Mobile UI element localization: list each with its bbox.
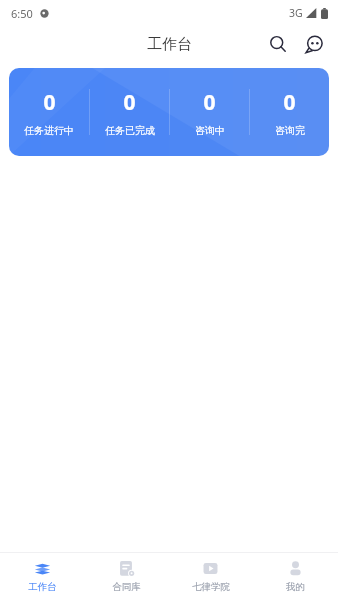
staticText: 咨询完 xyxy=(275,124,305,137)
staticText: 0 xyxy=(203,88,216,117)
staticText: 合同库 xyxy=(112,581,141,593)
staticText: 任务已完成 xyxy=(105,124,155,137)
staticText: 6:50 xyxy=(11,6,33,21)
staticText: 0 xyxy=(283,88,296,117)
button[interactable]: Messages xyxy=(298,28,330,60)
staticText: 咨询中 xyxy=(195,124,225,137)
button[interactable]: 0 xyxy=(90,68,169,156)
button[interactable]: 工作台 xyxy=(0,553,84,600)
button[interactable]: 七律学院 xyxy=(168,553,253,600)
staticText: 我的 xyxy=(286,581,305,593)
button[interactable]: 0 xyxy=(250,68,329,156)
button[interactable]: 合同库 xyxy=(84,553,168,600)
button[interactable]: 0 xyxy=(9,68,89,156)
button[interactable]: 我的 xyxy=(253,553,338,600)
staticText: 0 xyxy=(43,88,56,117)
staticText: 3G xyxy=(289,6,303,20)
button[interactable]: 0 xyxy=(170,68,249,156)
staticText: 任务进行中 xyxy=(24,124,74,137)
staticText: 七律学院 xyxy=(192,581,230,593)
button[interactable]: Search xyxy=(262,28,294,60)
staticText: 工作台 xyxy=(28,581,57,593)
staticText: 0 xyxy=(123,88,136,117)
staticText: 工作台 xyxy=(147,35,192,54)
